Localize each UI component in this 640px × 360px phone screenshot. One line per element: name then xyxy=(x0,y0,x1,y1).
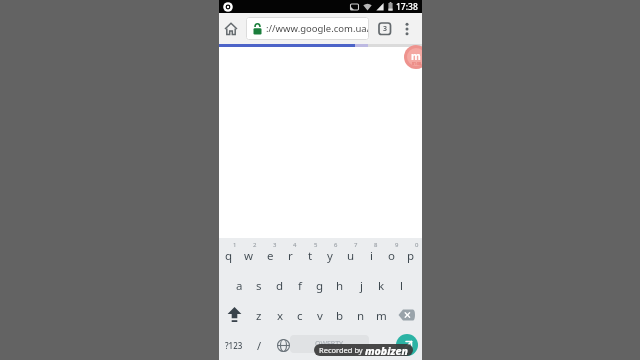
button[interactable]: t xyxy=(300,240,320,271)
staticText: p xyxy=(407,248,415,264)
button[interactable]: Recorded by xyxy=(314,344,413,356)
button[interactable]: m xyxy=(371,300,391,331)
staticText: 4 xyxy=(293,241,297,249)
staticText: 2 xyxy=(253,241,257,249)
button[interactable]: v xyxy=(310,300,330,331)
staticText: o xyxy=(388,248,395,264)
staticText: 17:38 xyxy=(396,1,418,13)
staticText: s xyxy=(256,278,262,294)
button[interactable] xyxy=(403,21,411,37)
button[interactable] xyxy=(223,21,239,37)
button[interactable]: e xyxy=(260,240,280,271)
staticText: i xyxy=(370,248,373,264)
button[interactable]: QWERTY xyxy=(290,335,369,353)
staticText: 8 xyxy=(374,241,378,249)
button[interactable]: u xyxy=(341,240,361,271)
staticText: 3 xyxy=(383,24,388,34)
staticText: mobizen xyxy=(365,344,408,356)
button[interactable]: o xyxy=(381,240,401,271)
staticText: ?123 xyxy=(225,340,243,351)
staticText: 6 xyxy=(334,241,338,249)
staticText: c xyxy=(297,308,303,324)
staticText: m xyxy=(376,308,387,324)
button[interactable]: c xyxy=(290,300,310,331)
staticText: Recorded by xyxy=(319,345,365,355)
button[interactable]: l xyxy=(391,270,411,301)
staticText: 01:08 xyxy=(412,61,421,66)
button[interactable]: f xyxy=(290,270,310,301)
staticText: a xyxy=(236,278,243,294)
staticText: ://www.google.com.ua/t xyxy=(266,22,369,35)
staticText: m xyxy=(411,49,421,63)
staticText: n xyxy=(357,308,365,324)
button[interactable]: q xyxy=(219,240,239,271)
staticText: v xyxy=(317,308,323,324)
staticText: x xyxy=(277,308,284,324)
staticText: k xyxy=(378,278,385,294)
staticText: y xyxy=(327,248,333,264)
button[interactable]: w xyxy=(239,240,259,271)
staticText: w xyxy=(244,248,254,264)
staticText: 9 xyxy=(395,241,399,249)
staticText: h xyxy=(336,278,344,294)
button[interactable]: ?123 xyxy=(219,330,249,360)
staticText: d xyxy=(276,278,284,294)
staticText: r xyxy=(288,248,293,264)
staticText: u xyxy=(347,248,355,264)
button[interactable]: x xyxy=(270,300,290,331)
staticText: z xyxy=(256,308,262,324)
staticText: 0 xyxy=(415,241,419,249)
button[interactable]: b xyxy=(330,300,350,331)
button[interactable]: r xyxy=(280,240,300,271)
staticText: QWERTY xyxy=(315,339,344,349)
staticText: l xyxy=(400,278,403,294)
staticText: t xyxy=(308,248,313,264)
staticText: j xyxy=(360,278,363,294)
staticText: 3 xyxy=(273,241,277,249)
button[interactable]: a xyxy=(229,270,249,301)
button[interactable]: p xyxy=(401,240,421,271)
staticText: g xyxy=(316,278,324,294)
staticText: 5 xyxy=(314,241,318,249)
button[interactable]: n xyxy=(351,300,371,331)
button[interactable]: k xyxy=(371,270,391,301)
button[interactable]: s xyxy=(249,270,269,301)
button[interactable]: 3 xyxy=(378,22,392,36)
staticText: / xyxy=(257,338,262,353)
button[interactable] xyxy=(391,299,421,330)
button[interactable]: d xyxy=(270,270,290,301)
button[interactable]: i xyxy=(361,240,381,271)
staticText: q xyxy=(225,248,233,264)
button[interactable] xyxy=(273,330,294,360)
button[interactable]: g xyxy=(310,270,330,301)
staticText: b xyxy=(336,308,344,324)
staticText: f xyxy=(298,278,302,294)
button[interactable]: j xyxy=(351,270,371,301)
button[interactable]: h xyxy=(330,270,350,301)
button[interactable]: z xyxy=(249,300,269,331)
button[interactable]: m xyxy=(404,45,422,69)
button[interactable] xyxy=(396,334,418,356)
button[interactable]: y xyxy=(320,240,340,271)
button[interactable]: / xyxy=(249,330,269,360)
staticText: 1 xyxy=(233,241,237,249)
button[interactable]: ://www.google.com.ua/t xyxy=(246,17,369,40)
staticText: 7 xyxy=(354,241,358,249)
button[interactable] xyxy=(219,299,249,330)
staticText: e xyxy=(267,248,274,264)
